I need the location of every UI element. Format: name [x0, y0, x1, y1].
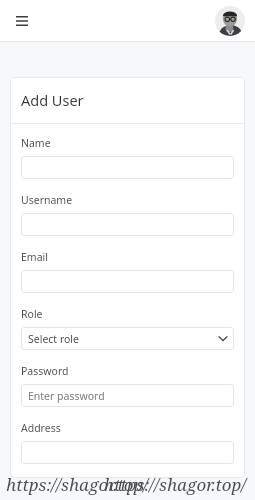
button[interactable]: Role selector [21, 327, 234, 350]
staticText: https://shagor.top/ [104, 473, 247, 496]
button[interactable] [21, 441, 234, 464]
staticText: Add User [21, 90, 84, 110]
button[interactable]: Open navigation menu [9, 8, 34, 33]
staticText: Enter password [28, 389, 105, 403]
button[interactable]: Account profile [215, 6, 245, 36]
staticText: https://shagor.top/ [6, 473, 149, 496]
staticText: Address [21, 421, 61, 435]
staticText: Name [21, 136, 51, 150]
button[interactable] [21, 156, 234, 179]
button[interactable] [21, 270, 234, 293]
button[interactable]: Enter password [21, 384, 234, 407]
staticText: Select role [28, 332, 79, 346]
button[interactable] [21, 213, 234, 236]
staticText: Role [21, 307, 43, 321]
staticText: Username [21, 193, 73, 207]
staticText: Password [21, 364, 69, 378]
staticText: Email [21, 250, 48, 264]
